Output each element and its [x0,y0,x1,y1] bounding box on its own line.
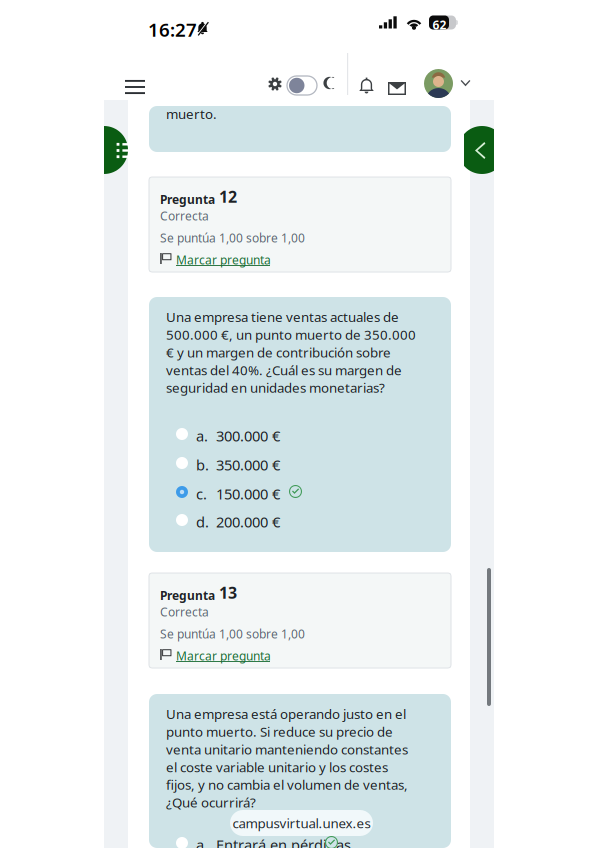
staticText: Pregunta [160,587,215,603]
staticText: a. [196,835,208,848]
button[interactable]: Notifications [350,69,383,103]
staticText: Correcta [160,604,209,620]
staticText: campusvirtual.unex.es [232,814,370,832]
button[interactable]: Messages [380,72,414,105]
staticText: 16:27 [148,17,197,42]
staticText: Se puntúa 1,00 sobre 1,00 [160,626,305,642]
staticText: 13 [219,582,237,603]
staticText: Entrará en pérdidas [216,835,351,848]
staticText: c. [196,484,207,503]
staticText: Una empresa está operando justo en el pu… [166,705,408,811]
button[interactable]: a. [176,835,421,848]
button[interactable]: Marcar pregunta [160,648,276,662]
button[interactable]: Account menu [424,64,471,103]
staticText: 62 [432,17,446,33]
staticText: a. [196,426,208,445]
staticText: 300.000 € [216,426,280,445]
staticText: 350.000 € [216,455,280,474]
staticText: Marcar pregunta [176,648,271,664]
staticText: Correcta [160,208,209,224]
button[interactable]: Menu [117,70,153,104]
button[interactable]: Toggle dark mode [287,76,317,95]
button[interactable]: a. [176,426,421,442]
staticText: Una empresa tiene ventas actuales de 500… [166,308,416,396]
button[interactable]: Quiz navigation [104,126,141,174]
staticText: Marcar pregunta [176,252,271,268]
button[interactable]: b. [176,455,421,471]
staticText: Se puntúa 1,00 sobre 1,00 [160,230,305,246]
staticText: Pregunta [160,191,215,207]
staticText: muerto. [166,105,217,123]
staticText: 200.000 € [216,512,280,531]
button[interactable]: d. [176,512,421,528]
button[interactable]: c. [176,484,421,500]
staticText: d. [196,512,209,531]
staticText: 150.000 € [216,484,280,503]
staticText: 12 [219,186,237,207]
button[interactable]: Marcar pregunta [160,252,276,266]
staticText: b. [196,455,209,474]
button[interactable]: Previous page [464,126,494,174]
